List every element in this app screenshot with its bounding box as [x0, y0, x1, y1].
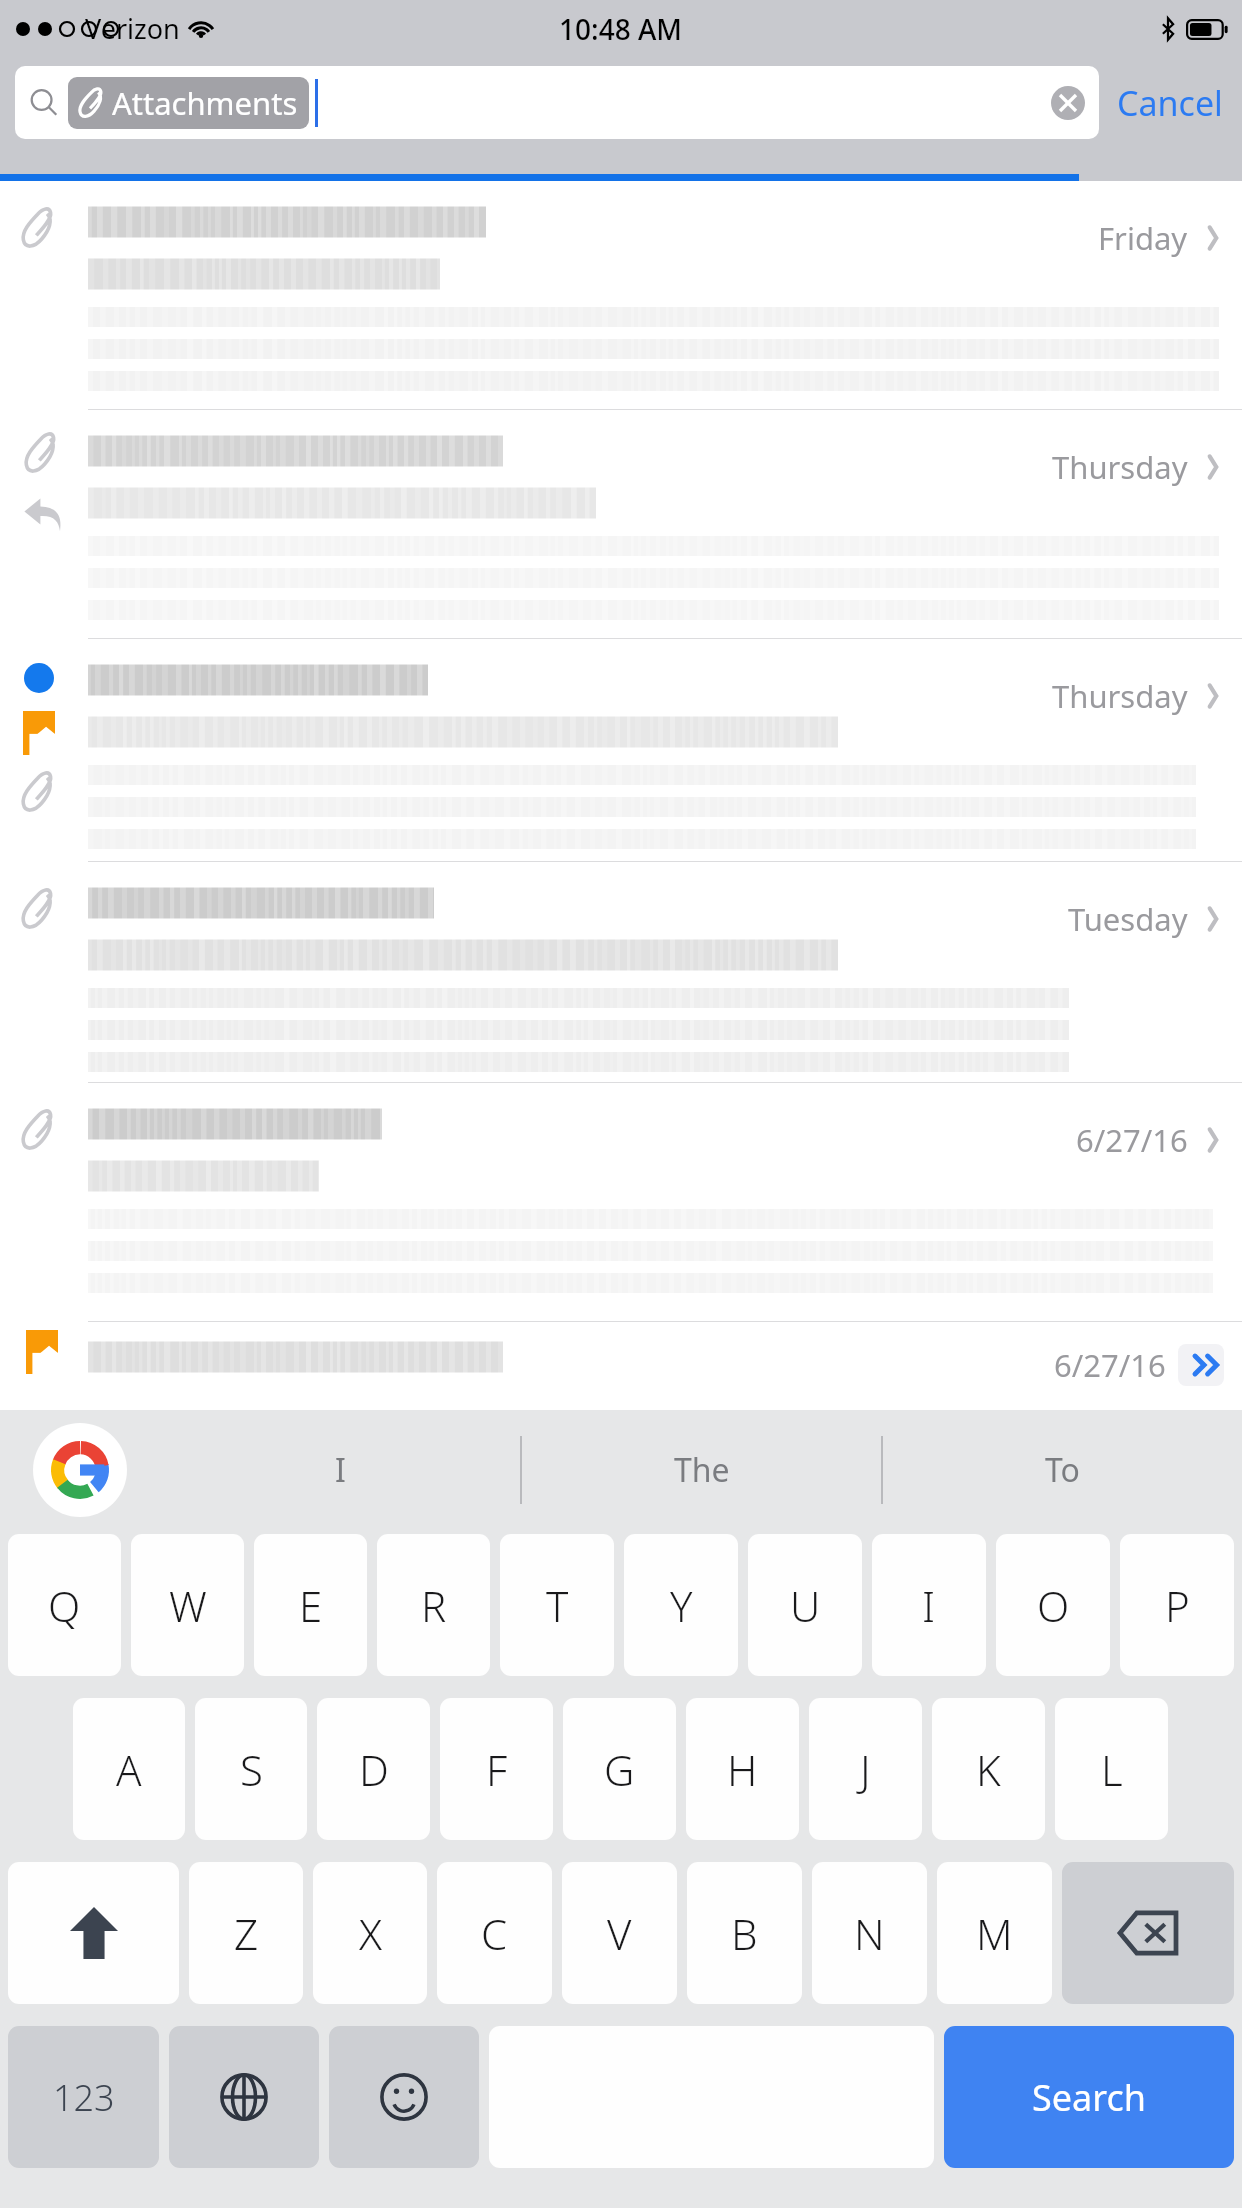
staticText: Tuesday: [1068, 898, 1188, 940]
button[interactable]: Attachments: [15, 66, 1099, 139]
button[interactable]: Q: [8, 1534, 121, 1676]
button[interactable]: Attachments: [68, 77, 309, 129]
staticText: 6/27/16: [1076, 1119, 1188, 1161]
staticText: L: [1101, 1741, 1123, 1798]
staticText: Search: [1032, 2073, 1146, 2122]
staticText: 10:48 AM: [559, 10, 683, 48]
staticText: R: [421, 1577, 447, 1634]
button[interactable]: To: [883, 1410, 1242, 1530]
staticText: E: [299, 1577, 323, 1634]
button[interactable]: Tuesday: [0, 862, 1242, 1082]
button[interactable]: Cancel: [1113, 72, 1227, 134]
button[interactable]: B: [687, 1862, 802, 2004]
button[interactable]: S: [195, 1698, 307, 1840]
button[interactable]: A: [73, 1698, 185, 1840]
staticText: Z: [234, 1905, 259, 1962]
button[interactable]: Y: [624, 1534, 738, 1676]
staticText: P: [1165, 1577, 1190, 1634]
button[interactable]: M: [937, 1862, 1052, 2004]
button[interactable]: 123: [8, 2026, 159, 2168]
button[interactable]: F: [440, 1698, 553, 1840]
staticText: X: [359, 1905, 382, 1962]
button[interactable]: Clear text: [1051, 86, 1085, 120]
button[interactable]: L: [1055, 1698, 1168, 1840]
button[interactable]: Change language: [169, 2026, 319, 2168]
button[interactable]: T: [500, 1534, 614, 1676]
button[interactable]: Thursday: [0, 639, 1242, 861]
staticText: Attachments: [112, 82, 298, 124]
staticText: Thursday: [1052, 446, 1188, 488]
staticText: 123: [53, 2073, 115, 2122]
staticText: K: [976, 1741, 1001, 1798]
staticText: G: [604, 1741, 635, 1798]
button[interactable]: V: [562, 1862, 677, 2004]
staticText: V: [607, 1905, 632, 1962]
button[interactable]: Shift: [8, 1862, 179, 2004]
button[interactable]: G: [563, 1698, 676, 1840]
staticText: O: [1037, 1577, 1070, 1634]
button[interactable]: Search: [944, 2026, 1234, 2168]
staticText: Thursday: [1052, 675, 1188, 717]
staticText: H: [727, 1741, 758, 1798]
button[interactable]: K: [932, 1698, 1045, 1840]
button[interactable]: X: [313, 1862, 427, 2004]
button[interactable]: N: [812, 1862, 927, 2004]
button[interactable]: U: [748, 1534, 862, 1676]
button[interactable]: Google: [33, 1423, 127, 1517]
staticText: A: [116, 1741, 142, 1798]
button[interactable]: Backspace: [1062, 1862, 1234, 2004]
staticText: I: [335, 1448, 346, 1492]
button[interactable]: H: [686, 1698, 799, 1840]
staticText: U: [790, 1577, 821, 1634]
button[interactable]: J: [809, 1698, 922, 1840]
button[interactable]: 6/27/16: [0, 1083, 1242, 1321]
staticText: Q: [48, 1577, 81, 1634]
button[interactable]: R: [377, 1534, 490, 1676]
staticText: To: [1045, 1448, 1080, 1492]
staticText: F: [486, 1741, 508, 1798]
button[interactable]: Thursday: [0, 410, 1242, 638]
button[interactable]: Emoji: [329, 2026, 479, 2168]
staticText: W: [169, 1577, 207, 1634]
staticText: Cancel: [1117, 80, 1223, 126]
staticText: Friday: [1098, 217, 1188, 259]
staticText: J: [860, 1741, 871, 1798]
button[interactable]: The: [522, 1410, 881, 1530]
staticText: I: [922, 1577, 936, 1634]
button[interactable]: 6/27/16: [0, 1322, 1242, 1386]
staticText: M: [976, 1905, 1013, 1962]
button[interactable]: P: [1120, 1534, 1234, 1676]
staticText: S: [240, 1741, 263, 1798]
staticText: Verizon: [85, 10, 180, 47]
button[interactable]: E: [254, 1534, 367, 1676]
button[interactable]: I: [872, 1534, 986, 1676]
staticText: Y: [670, 1577, 693, 1634]
button[interactable]: Z: [189, 1862, 303, 2004]
button[interactable]: I: [160, 1410, 520, 1530]
button[interactable]: O: [996, 1534, 1110, 1676]
staticText: 6/27/16: [1054, 1344, 1166, 1386]
staticText: C: [481, 1905, 508, 1962]
staticText: N: [854, 1905, 885, 1962]
button[interactable]: C: [437, 1862, 552, 2004]
staticText: The: [674, 1448, 730, 1492]
button[interactable]: D: [317, 1698, 430, 1840]
button[interactable]: Friday: [0, 181, 1242, 409]
staticText: T: [546, 1577, 569, 1634]
button[interactable]: W: [131, 1534, 244, 1676]
staticText: B: [731, 1905, 758, 1962]
staticText: D: [359, 1741, 389, 1798]
